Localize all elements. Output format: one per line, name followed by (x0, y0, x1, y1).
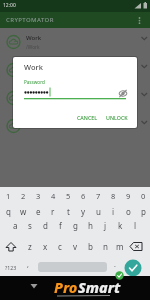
button[interactable]: s (22, 216, 38, 234)
button[interactable]: t (60, 202, 76, 220)
button[interactable]: 7 (90, 187, 106, 205)
button[interactable]: 0 (135, 187, 150, 205)
staticText: 7 (96, 191, 101, 201)
staticText: o (126, 206, 131, 217)
staticText: k (118, 220, 123, 231)
staticText: 6 (81, 191, 86, 201)
button[interactable]: h (82, 216, 98, 234)
staticText: ?123 (5, 264, 17, 271)
staticText: . (114, 260, 116, 270)
button[interactable]: , (20, 256, 36, 274)
staticText: r (51, 206, 55, 217)
staticText: 4 (51, 191, 56, 201)
staticText: 3 (36, 191, 41, 201)
staticText: /Work (26, 44, 40, 51)
staticText: CANCEL (77, 114, 98, 121)
button[interactable]: p (135, 202, 150, 220)
staticText: Work (24, 62, 43, 72)
button[interactable]: n (97, 237, 113, 255)
button[interactable]: UNLOCK (102, 111, 132, 124)
staticText: s (28, 220, 32, 231)
button[interactable]: 2 (15, 187, 31, 205)
staticText: v (73, 241, 78, 252)
button[interactable] (2, 240, 19, 255)
button[interactable]: . (107, 256, 123, 274)
staticText: j (104, 220, 107, 231)
staticText: f (59, 220, 62, 231)
staticText: l (134, 220, 137, 231)
button[interactable]: CANCEL (73, 111, 101, 124)
button[interactable]: 9 (120, 187, 136, 205)
button[interactable]: 8 (105, 187, 121, 205)
button[interactable] (124, 259, 142, 277)
staticText: e (36, 206, 41, 217)
staticText: Work (26, 34, 42, 42)
staticText: , (27, 260, 29, 270)
button[interactable]: w (15, 202, 31, 220)
button[interactable]: e (30, 202, 46, 220)
staticText: 12:00 (3, 2, 16, 9)
button[interactable]: ?123 (3, 258, 19, 276)
staticText: t (67, 206, 70, 217)
button[interactable]: d (37, 216, 53, 234)
button[interactable]: m (112, 237, 128, 255)
staticText: a (13, 220, 18, 231)
button[interactable]: 5 (60, 187, 76, 205)
staticText: z (28, 241, 32, 252)
staticText: q (6, 206, 11, 217)
button[interactable]: v (67, 237, 83, 255)
staticText: UNLOCK (106, 114, 128, 121)
button[interactable]: i (105, 202, 121, 220)
button[interactable]: c (52, 237, 68, 255)
staticText: b (88, 241, 93, 252)
staticText: 1 (6, 191, 11, 201)
staticText: Password (24, 79, 45, 85)
button[interactable]: u (90, 202, 106, 220)
staticText: y (81, 206, 86, 217)
staticText: CRYPTOMATOR (6, 16, 54, 24)
button[interactable]: o (120, 202, 136, 220)
staticText: 0 (141, 191, 146, 201)
staticText: 5 (66, 191, 71, 201)
button[interactable]: 4 (45, 187, 61, 205)
button[interactable] (24, 278, 44, 298)
button[interactable]: g (67, 216, 83, 234)
button[interactable]: y (75, 202, 91, 220)
staticText: h (88, 220, 93, 231)
staticText: u (96, 206, 101, 217)
staticText: i (112, 206, 115, 217)
staticText: p (141, 206, 146, 217)
staticText: Smart (78, 277, 121, 297)
button[interactable]: 3 (30, 187, 46, 205)
button[interactable]: j (97, 216, 113, 234)
staticText: w (20, 206, 27, 217)
button[interactable]: x (37, 237, 53, 255)
button[interactable] (128, 240, 146, 255)
staticText: d (43, 220, 48, 231)
button[interactable]: 1 (0, 187, 16, 205)
button[interactable]: k (112, 216, 128, 234)
button[interactable] (116, 87, 130, 100)
button[interactable]: b (82, 237, 98, 255)
button[interactable]: l (127, 216, 143, 234)
staticText: g (73, 220, 78, 231)
staticText: x (43, 241, 48, 252)
staticText: 8 (111, 191, 116, 201)
button[interactable]: f (52, 216, 68, 234)
staticText: 9 (126, 191, 131, 201)
button[interactable]: q (0, 202, 16, 220)
button[interactable]: 6 (75, 187, 91, 205)
staticText: m (116, 241, 124, 252)
staticText: c (58, 241, 62, 252)
button[interactable]: a (7, 216, 23, 234)
button[interactable]: z (22, 237, 38, 255)
staticText: n (103, 241, 108, 252)
button[interactable]: r (45, 202, 61, 220)
staticText: 2 (21, 191, 26, 201)
staticText: Pro (54, 277, 78, 297)
